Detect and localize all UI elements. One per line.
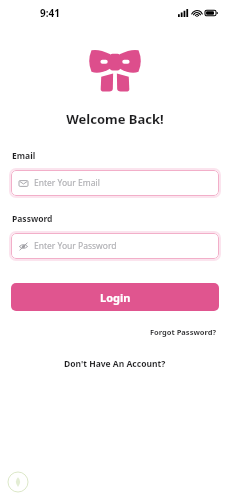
staticText: Enter Your Email [34,177,100,189]
staticText: 9:41 [40,6,60,20]
staticText: Welcome Back! [0,110,230,128]
staticText: Enter Your Password [34,240,117,252]
other: Email [19,179,28,188]
button[interactable]: Login [11,283,219,311]
staticText: Forgot Password? [150,327,217,337]
button[interactable]: Email [11,170,219,196]
button[interactable]: Forgot Password? [148,325,219,339]
other: Show password [19,242,28,251]
staticText: Don't Have An Account? [64,358,166,370]
button[interactable]: Show password [11,233,219,259]
staticText: Email [12,150,36,162]
staticText: Login [100,290,131,305]
staticText: Password [12,213,53,225]
button[interactable]: Don't Have An Account? [61,355,169,373]
